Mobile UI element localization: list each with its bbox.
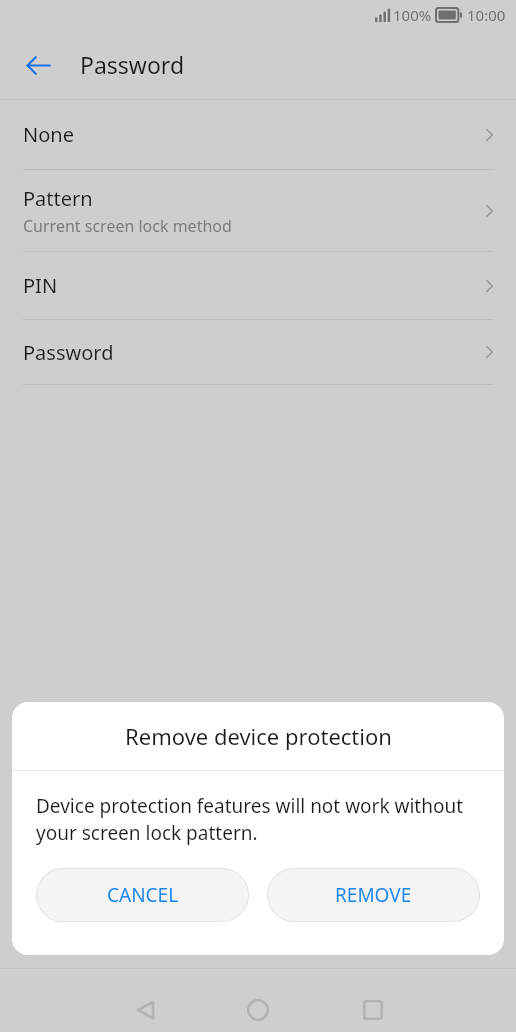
staticText: Device protection features will not work…: [36, 793, 474, 846]
button[interactable]: Recent apps: [345, 982, 401, 1032]
button[interactable]: PIN: [0, 252, 516, 319]
staticText: Current screen lock method: [23, 215, 232, 237]
button[interactable]: Home: [230, 982, 286, 1032]
staticText: REMOVE: [335, 882, 412, 908]
staticText: 100%: [393, 5, 432, 25]
staticText: Pattern: [23, 185, 93, 212]
button[interactable]: CANCEL: [36, 868, 249, 922]
staticText: Password: [23, 339, 114, 366]
button[interactable]: Password: [0, 320, 516, 384]
button[interactable]: Pattern: [0, 170, 516, 251]
button[interactable]: Back: [14, 41, 62, 89]
button[interactable]: Back: [118, 982, 174, 1032]
staticText: Password: [80, 49, 185, 80]
staticText: 10:00: [467, 5, 506, 25]
button[interactable]: None: [0, 100, 516, 169]
staticText: Remove device protection: [125, 721, 392, 751]
button[interactable]: REMOVE: [267, 868, 480, 922]
staticText: CANCEL: [107, 882, 179, 908]
staticText: None: [23, 121, 74, 148]
staticText: PIN: [23, 272, 58, 299]
